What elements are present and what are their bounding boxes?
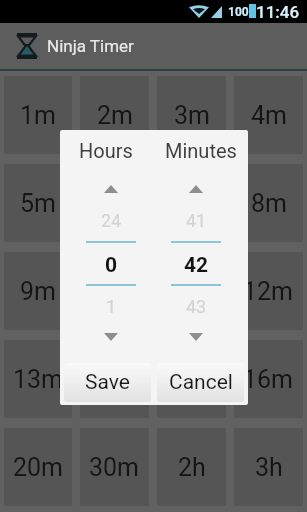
staticText: 16m: [243, 365, 294, 394]
button[interactable]: 1m: [4, 76, 72, 154]
staticText: 3h: [255, 453, 283, 482]
staticText: 13m: [13, 365, 64, 394]
staticText: 1m: [20, 101, 56, 130]
staticText: Ninja Timer: [47, 36, 134, 56]
staticText: 2m: [97, 101, 133, 130]
button[interactable]: 11m: [157, 252, 226, 330]
staticText: 15m: [166, 365, 217, 394]
staticText: 6m: [97, 189, 133, 218]
staticText: 10m: [89, 277, 140, 306]
staticText: 14m: [89, 365, 140, 394]
staticText: 12m: [243, 277, 294, 306]
staticText: 100: [228, 5, 249, 19]
staticText: 2h: [178, 453, 206, 482]
button[interactable]: Decrease Minutes: [150, 322, 242, 352]
button[interactable]: 8m: [234, 164, 303, 242]
staticText: 5m: [20, 189, 56, 218]
button[interactable]: 14m: [80, 340, 149, 418]
staticText: 11:46: [256, 2, 300, 22]
button[interactable]: Cancel: [157, 363, 244, 402]
button[interactable]: 15m: [157, 340, 226, 418]
button[interactable]: 9m: [4, 252, 72, 330]
button[interactable]: Increase Hours: [65, 174, 157, 204]
staticText: 42: [184, 253, 209, 275]
staticText: 8m: [251, 189, 287, 218]
staticText: Save: [85, 370, 130, 395]
button[interactable]: 13m: [4, 340, 72, 418]
button[interactable]: 3h: [234, 428, 303, 506]
button[interactable]: 30m: [80, 428, 149, 506]
staticText: 0: [105, 253, 118, 275]
button[interactable]: 2m: [80, 76, 149, 154]
button[interactable]: 2h: [157, 428, 226, 506]
staticText: 20m: [13, 453, 64, 482]
staticText: 1: [106, 296, 117, 317]
button[interactable]: 16m: [234, 340, 303, 418]
button[interactable]: 3m: [157, 76, 226, 154]
staticText: Cancel: [169, 370, 233, 395]
button[interactable]: 10m: [80, 252, 149, 330]
staticText: Hours: [79, 139, 133, 162]
staticText: Minutes: [165, 139, 237, 162]
button[interactable]: 5m: [4, 164, 72, 242]
staticText: 24: [101, 210, 122, 231]
staticText: 4m: [251, 101, 287, 130]
staticText: 7m: [174, 189, 210, 218]
button[interactable]: 4m: [234, 76, 303, 154]
button[interactable]: 12m: [234, 252, 303, 330]
button[interactable]: 6m: [80, 164, 149, 242]
staticText: 41: [186, 210, 207, 231]
button[interactable]: Save: [64, 363, 151, 402]
staticText: 9m: [20, 277, 56, 306]
button[interactable]: Ninja Timer: [0, 23, 307, 69]
staticText: 43: [186, 296, 207, 317]
staticText: 3m: [174, 101, 210, 130]
button[interactable]: 7m: [157, 164, 226, 242]
button[interactable]: Increase Minutes: [150, 174, 242, 204]
button[interactable]: Decrease Hours: [65, 322, 157, 352]
staticText: 11m: [166, 277, 217, 306]
staticText: 30m: [89, 453, 140, 482]
button[interactable]: 20m: [4, 428, 72, 506]
